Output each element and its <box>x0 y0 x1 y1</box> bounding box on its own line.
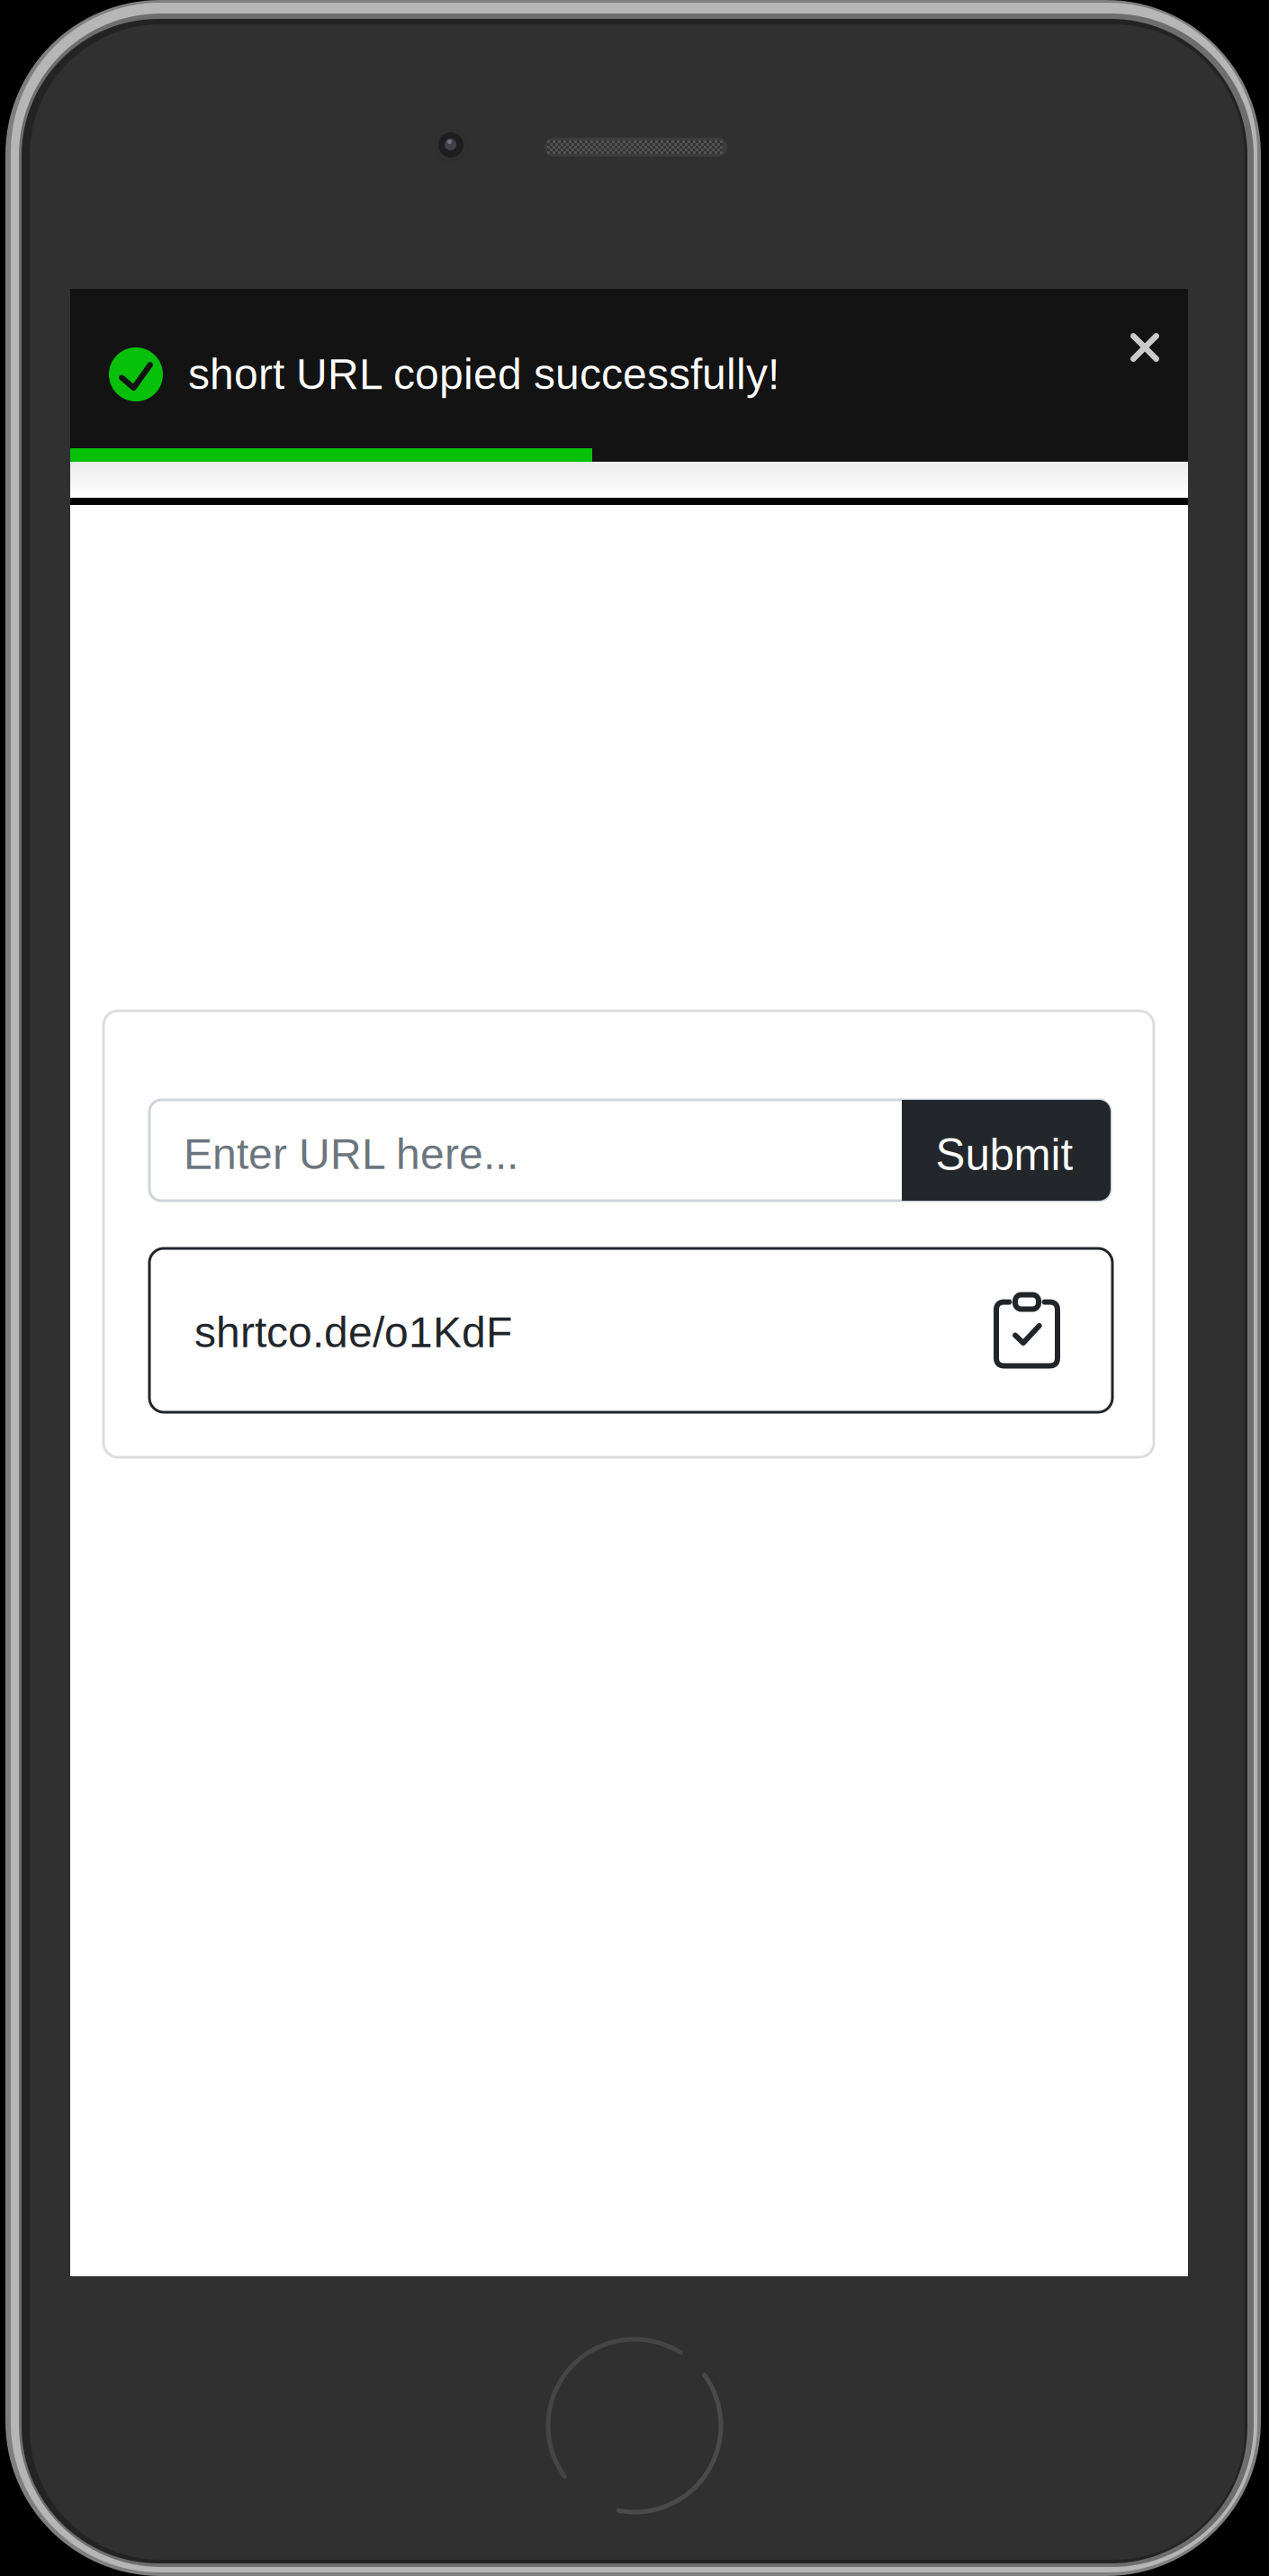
staticText: short URL copied successfully! <box>188 350 779 398</box>
staticText: Enter URL here... <box>184 1130 518 1178</box>
button[interactable]: Submit <box>902 1100 1111 1201</box>
button[interactable]: Dismiss notification <box>1102 304 1188 391</box>
staticText: shrtco.de/o1KdF <box>194 1308 512 1356</box>
staticText: Submit <box>936 1130 1073 1180</box>
button[interactable]: shrtco.de/o1KdF <box>149 1248 1112 1412</box>
